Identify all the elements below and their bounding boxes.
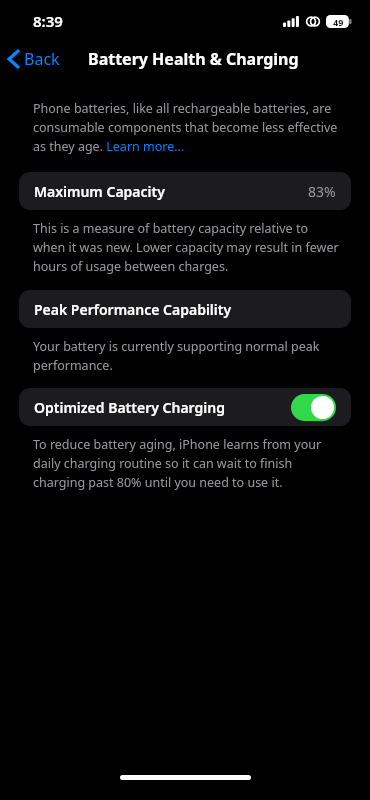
staticText: Phone batteries, like all rechargeable b… [33, 100, 346, 155]
staticText: Peak Performance Capability [34, 300, 232, 319]
staticText: Optimized Battery Charging [34, 398, 225, 417]
staticText: Your battery is currently supporting nor… [33, 338, 340, 374]
staticText: 83% [308, 182, 336, 201]
staticText: Back [24, 48, 60, 70]
staticText: This is a measure of battery capacity re… [33, 220, 340, 275]
staticText: To reduce battery aging, iPhone learns f… [33, 436, 340, 491]
staticText: 49 [333, 16, 344, 28]
button[interactable]: Back [0, 44, 68, 74]
button[interactable]: Peak Performance Capability [19, 290, 351, 328]
button[interactable]: Optimized Battery Charging toggle [291, 394, 336, 421]
staticText: Maximum Capacity [34, 182, 165, 201]
staticText: 8:39 [33, 11, 63, 31]
staticText: Battery Health & Charging [88, 48, 299, 70]
button[interactable]: Maximum Capacity [19, 172, 351, 210]
button[interactable]: Optimized Battery Charging [19, 388, 351, 426]
